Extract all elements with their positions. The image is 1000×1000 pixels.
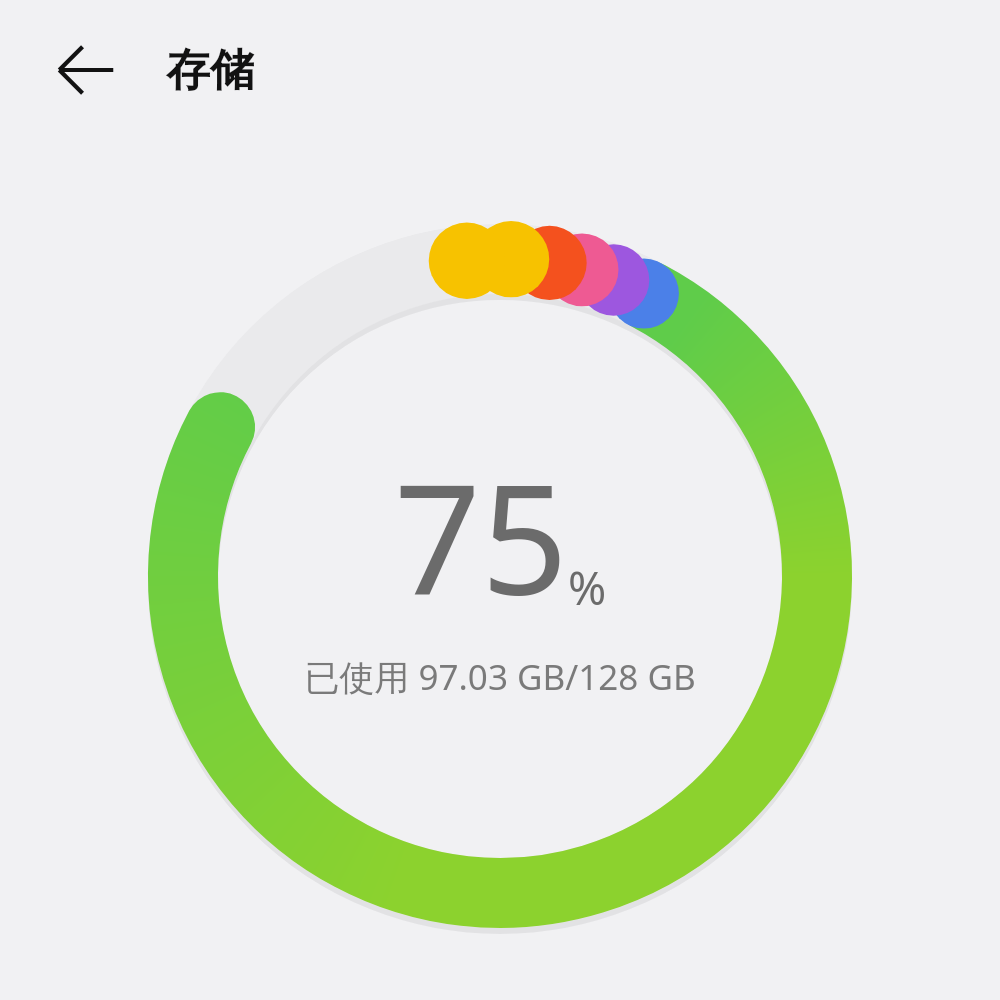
staticText: % [568,556,607,619]
staticText: 已使用 97.03 GB/128 GB [304,653,696,701]
staticText: 存储 [166,43,254,98]
button[interactable]: Back [48,32,124,108]
staticText: 75 [394,432,568,639]
